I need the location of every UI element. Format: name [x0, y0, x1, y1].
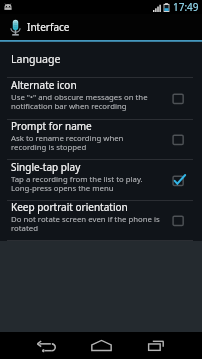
button[interactable]: Prompt for name [0, 120, 202, 160]
staticText: Ask to rename recording when recording i… [11, 133, 124, 153]
staticText: Tap a recording from the list to play. L… [11, 174, 143, 194]
staticText: Interface [27, 20, 70, 34]
button[interactable]: Checked [170, 172, 188, 190]
staticText: Keep portrait orientation [11, 200, 128, 214]
button[interactable]: Single-tap play [0, 160, 202, 201]
button[interactable]: Recent apps [136, 332, 176, 359]
button[interactable]: Back [26, 332, 66, 359]
button[interactable]: Alternate icon [0, 78, 202, 120]
button[interactable]: Keep portrait orientation [0, 201, 202, 241]
button[interactable]: Unchecked [170, 212, 188, 230]
button[interactable]: Unchecked [170, 131, 188, 149]
staticText: 17:49 [173, 0, 199, 14]
staticText: Alternate icon [11, 78, 77, 92]
staticText: Prompt for name [11, 119, 92, 133]
staticText: Use "•" and obscure messages on the noti… [11, 92, 148, 112]
staticText: Do not rotate screen even if the phone i… [11, 214, 160, 234]
button[interactable]: Interface [5, 14, 202, 40]
staticText: Single-tap play [11, 160, 81, 174]
staticText: Language [11, 52, 61, 66]
button[interactable]: Home [81, 332, 121, 359]
button[interactable]: Unchecked [170, 90, 188, 108]
